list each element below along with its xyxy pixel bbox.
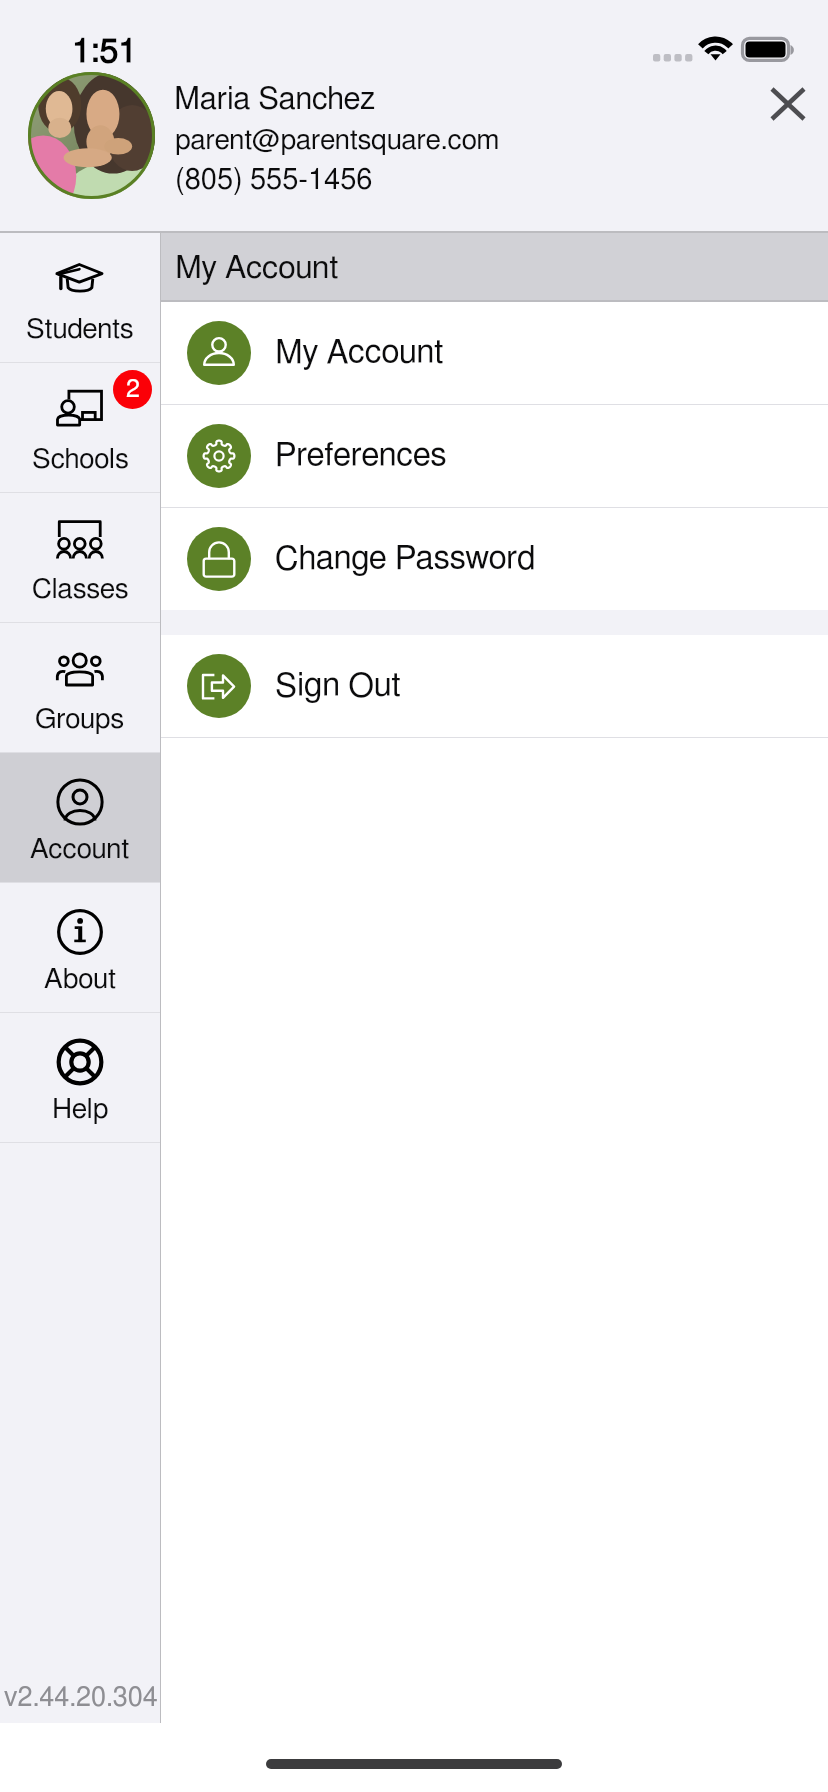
staticText: Maria Sanchez — [174, 84, 376, 115]
staticText: Change Password — [275, 543, 536, 576]
button[interactable]: About — [0, 883, 160, 1013]
button[interactable]: Close — [748, 64, 828, 144]
staticText: Classes — [32, 576, 129, 604]
staticText: My Account — [275, 337, 444, 370]
staticText: Groups — [35, 706, 125, 734]
button[interactable]: Change Password — [161, 508, 828, 610]
staticText: Help — [52, 1096, 109, 1124]
staticText: v2.44.20.304 — [4, 1684, 158, 1711]
staticText: About — [44, 966, 116, 994]
button[interactable]: Groups — [0, 623, 160, 753]
button[interactable]: Preferences — [161, 405, 828, 507]
staticText: 2 — [126, 377, 140, 402]
staticText: Account — [30, 836, 130, 864]
button[interactable]: Sign Out — [161, 635, 828, 737]
button[interactable]: Classes — [0, 493, 160, 623]
button[interactable]: Students — [0, 233, 160, 363]
button[interactable]: My Account — [161, 302, 828, 404]
button[interactable]: Account — [0, 753, 160, 883]
button[interactable]: Help — [0, 1013, 160, 1143]
staticText: 1:51 — [72, 35, 138, 69]
staticText: Students — [26, 316, 134, 344]
staticText: parent@parentsquare.com — [175, 127, 500, 155]
staticText: My Account — [175, 252, 339, 284]
staticText: Sign Out — [275, 670, 401, 703]
staticText: Preferences — [275, 440, 447, 473]
staticText: Schools — [32, 446, 129, 474]
button[interactable]: Schools — [0, 363, 160, 493]
staticText: (805) 555-1456 — [175, 166, 373, 195]
